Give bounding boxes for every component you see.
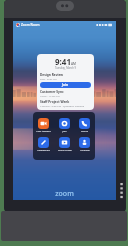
- staticText: 1:00 pm - 2:00 PM · Quarterly Outlook: [40, 104, 85, 107]
- staticText: Customer Sync: [40, 90, 64, 94]
- staticText: Tuesday, March 9: [40, 66, 91, 70]
- staticText: 9:00 - 9:30 AM: [40, 77, 57, 80]
- staticText: Zoom Room: [21, 23, 40, 27]
- staticText: Design Review: [40, 73, 63, 77]
- staticText: Join: [62, 83, 69, 87]
- button[interactable]: Account: [16, 23, 20, 27]
- button[interactable]: Join: [55, 118, 74, 133]
- staticText: Whiteboard: [37, 149, 50, 152]
- button[interactable]: Share screen: [55, 137, 74, 152]
- staticText: Contacts: [80, 149, 90, 152]
- staticText: Phone: [81, 130, 88, 133]
- button[interactable]: Design Review: [40, 73, 91, 80]
- button[interactable]: Customer Sync: [40, 90, 91, 97]
- staticText: Share screen: [58, 149, 72, 152]
- button[interactable]: Whiteboard: [34, 137, 53, 152]
- button[interactable]: Join: [40, 82, 91, 88]
- button[interactable]: Staff Project Week: [40, 100, 91, 107]
- button[interactable]: New Meeting: [34, 118, 53, 133]
- staticText: Join: [62, 130, 67, 133]
- staticText: 9:41: [55, 56, 71, 67]
- staticText: Staff Project Week: [40, 100, 70, 104]
- button[interactable]: Contacts: [75, 137, 94, 152]
- staticText: AM: [71, 62, 77, 66]
- button[interactable]: Phone: [75, 118, 94, 133]
- staticText: zoom: [13, 189, 116, 199]
- staticText: 10:00 - 11:00 AM: [40, 94, 60, 97]
- staticText: New Meeting: [36, 130, 51, 133]
